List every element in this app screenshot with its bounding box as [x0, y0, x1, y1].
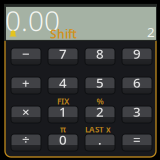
staticText: = — [133, 131, 141, 148]
staticText: 7 — [59, 45, 67, 62]
staticText: 9 — [133, 45, 141, 62]
staticText: 5 — [96, 74, 104, 91]
staticText: 2 — [96, 103, 104, 120]
button[interactable]: 8 — [85, 48, 115, 65]
button[interactable]: multiply — [11, 106, 41, 123]
button[interactable]: 0 — [48, 134, 78, 151]
button[interactable]: minus — [11, 48, 41, 65]
staticText: 3 — [133, 103, 141, 120]
staticText: × — [22, 103, 30, 120]
button[interactable]: 5 — [85, 77, 115, 94]
button[interactable]: equals — [122, 134, 152, 151]
staticText: 6 — [133, 74, 141, 91]
staticText: 4 — [59, 74, 67, 91]
staticText: . — [98, 131, 102, 148]
staticText: − — [22, 45, 30, 62]
button[interactable]: 6 — [122, 77, 152, 94]
staticText: % — [96, 96, 103, 107]
button[interactable]: 7 — [48, 48, 78, 65]
staticText: + — [22, 74, 30, 91]
staticText: 0.00 — [5, 2, 60, 39]
staticText: 1 — [59, 103, 67, 120]
button[interactable]: 1 — [48, 106, 78, 123]
button[interactable]: 3 — [122, 106, 152, 123]
staticText: Shift — [50, 26, 77, 42]
button[interactable]: plus — [11, 77, 41, 94]
staticText: LAST x — [85, 124, 111, 135]
staticText: 2 — [147, 23, 155, 41]
button[interactable]: divide — [11, 134, 41, 151]
button[interactable]: decimal point — [85, 134, 115, 151]
staticText: π — [60, 124, 66, 135]
button[interactable]: 2 — [85, 106, 115, 123]
staticText: FIX — [57, 96, 69, 107]
staticText: 0 — [59, 131, 67, 148]
button[interactable]: 4 — [48, 77, 78, 94]
staticText: 8 — [96, 45, 104, 62]
button[interactable]: 9 — [122, 48, 152, 65]
staticText: ÷ — [22, 131, 30, 148]
